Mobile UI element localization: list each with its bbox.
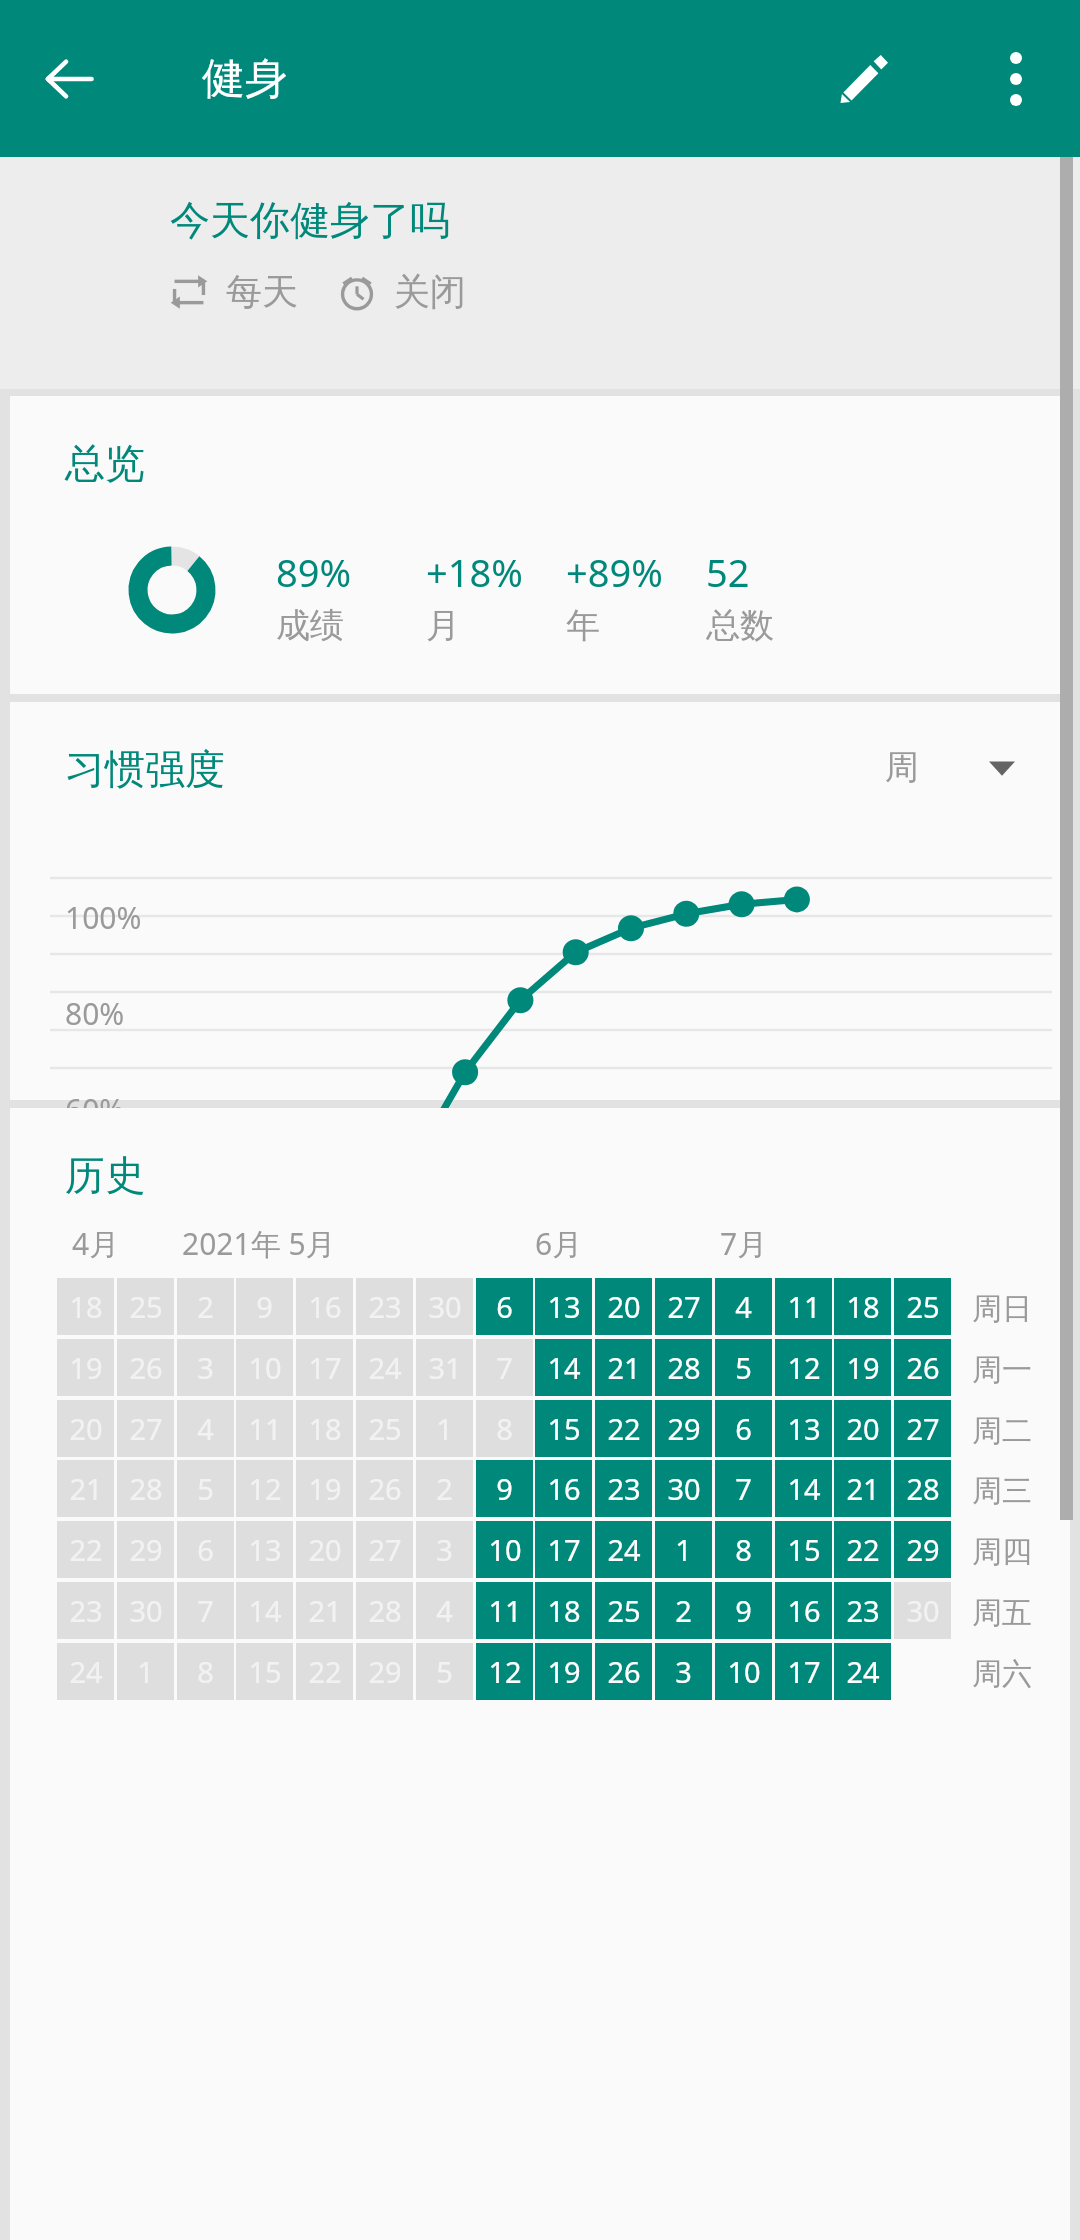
button[interactable]: 1 (655, 1521, 712, 1578)
button[interactable]: 9 (476, 1460, 533, 1517)
button[interactable]: 13 (775, 1400, 832, 1457)
button[interactable]: 26 (595, 1643, 652, 1700)
button[interactable]: 30 (655, 1460, 712, 1517)
button[interactable]: 26 (894, 1339, 951, 1396)
button[interactable]: 30 (894, 1582, 951, 1639)
button[interactable]: 6 (476, 1278, 533, 1335)
button[interactable]: 23 (834, 1582, 891, 1639)
button[interactable]: 21 (834, 1460, 891, 1517)
button[interactable]: 24 (356, 1339, 413, 1396)
button[interactable]: 13 (535, 1278, 592, 1335)
button[interactable]: 16 (535, 1460, 592, 1517)
button[interactable]: 周 (885, 746, 1015, 789)
button[interactable]: 26 (356, 1460, 413, 1517)
button[interactable]: 6 (177, 1521, 234, 1578)
button[interactable]: 23 (57, 1582, 114, 1639)
button[interactable]: 16 (296, 1278, 353, 1335)
button[interactable]: 17 (775, 1643, 832, 1700)
button[interactable]: 15 (775, 1521, 832, 1578)
button[interactable]: 19 (834, 1339, 891, 1396)
button[interactable]: 4 (416, 1582, 473, 1639)
button[interactable]: 25 (356, 1400, 413, 1457)
button[interactable]: 12 (476, 1643, 533, 1700)
button[interactable]: 21 (57, 1460, 114, 1517)
button[interactable]: 22 (296, 1643, 353, 1700)
button[interactable]: 18 (296, 1400, 353, 1457)
button[interactable]: 22 (834, 1521, 891, 1578)
button[interactable]: 7 (715, 1460, 772, 1517)
button[interactable]: 17 (535, 1521, 592, 1578)
button[interactable]: 29 (894, 1521, 951, 1578)
button[interactable]: 24 (57, 1643, 114, 1700)
button[interactable]: 18 (57, 1278, 114, 1335)
button[interactable]: 2 (177, 1278, 234, 1335)
button[interactable]: 14 (535, 1339, 592, 1396)
button[interactable]: 16 (775, 1582, 832, 1639)
button[interactable]: 30 (416, 1278, 473, 1335)
button[interactable]: 14 (775, 1460, 832, 1517)
button[interactable]: 4 (715, 1278, 772, 1335)
button[interactable]: 17 (296, 1339, 353, 1396)
button[interactable]: 20 (296, 1521, 353, 1578)
button[interactable]: 3 (177, 1339, 234, 1396)
button[interactable]: 25 (117, 1278, 174, 1335)
button[interactable]: 24 (595, 1521, 652, 1578)
button[interactable]: 3 (655, 1643, 712, 1700)
button[interactable]: 18 (535, 1582, 592, 1639)
button[interactable]: 7 (476, 1339, 533, 1396)
button[interactable]: 8 (715, 1521, 772, 1578)
button[interactable]: 19 (535, 1643, 592, 1700)
button[interactable]: 22 (57, 1521, 114, 1578)
button[interactable]: 18 (834, 1278, 891, 1335)
button[interactable]: 21 (296, 1582, 353, 1639)
button[interactable]: 2 (655, 1582, 712, 1639)
button[interactable]: 29 (655, 1400, 712, 1457)
button[interactable]: 19 (57, 1339, 114, 1396)
button[interactable]: 3 (416, 1521, 473, 1578)
button[interactable]: 13 (236, 1521, 293, 1578)
button[interactable]: 11 (476, 1582, 533, 1639)
button[interactable]: 19 (296, 1460, 353, 1517)
button[interactable]: 27 (356, 1521, 413, 1578)
button[interactable]: 29 (356, 1643, 413, 1700)
button[interactable]: 31 (416, 1339, 473, 1396)
button[interactable]: 27 (894, 1400, 951, 1457)
button[interactable]: 11 (775, 1278, 832, 1335)
button[interactable]: 26 (117, 1339, 174, 1396)
button[interactable]: 30 (117, 1582, 174, 1639)
button[interactable]: 22 (595, 1400, 652, 1457)
button[interactable]: 25 (595, 1582, 652, 1639)
button[interactable]: 12 (775, 1339, 832, 1396)
button[interactable]: 28 (117, 1460, 174, 1517)
button[interactable]: 15 (535, 1400, 592, 1457)
button[interactable]: 28 (655, 1339, 712, 1396)
button[interactable]: 10 (236, 1339, 293, 1396)
button[interactable]: 20 (57, 1400, 114, 1457)
button[interactable]: 25 (894, 1278, 951, 1335)
button[interactable]: 5 (715, 1339, 772, 1396)
button[interactable]: 28 (356, 1582, 413, 1639)
button[interactable]: 5 (177, 1460, 234, 1517)
button[interactable]: 27 (655, 1278, 712, 1335)
button[interactable]: 5 (416, 1643, 473, 1700)
button[interactable]: 7 (177, 1582, 234, 1639)
button[interactable]: 21 (595, 1339, 652, 1396)
button[interactable]: 12 (236, 1460, 293, 1517)
button[interactable]: 14 (236, 1582, 293, 1639)
button[interactable]: 2 (416, 1460, 473, 1517)
button[interactable]: 11 (236, 1400, 293, 1457)
button[interactable]: 24 (834, 1643, 891, 1700)
button[interactable]: 15 (236, 1643, 293, 1700)
button[interactable]: 8 (476, 1400, 533, 1457)
button[interactable]: 27 (117, 1400, 174, 1457)
button[interactable]: 8 (177, 1643, 234, 1700)
button[interactable]: 6 (715, 1400, 772, 1457)
button[interactable]: 28 (894, 1460, 951, 1517)
button[interactable]: 23 (595, 1460, 652, 1517)
button[interactable]: 9 (236, 1278, 293, 1335)
button[interactable]: 23 (356, 1278, 413, 1335)
button[interactable]: Back (26, 36, 112, 122)
button[interactable]: Edit (818, 33, 910, 125)
